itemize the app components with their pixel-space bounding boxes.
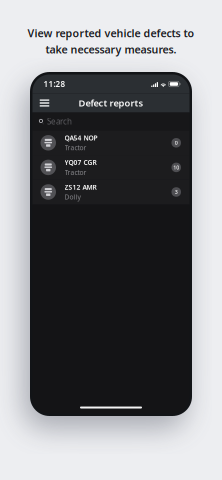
staticText: QA54 NOP	[64, 133, 97, 142]
staticText: Search	[47, 116, 72, 127]
staticText: Tractor	[64, 168, 86, 177]
button[interactable]: Search	[32, 112, 189, 130]
staticText: take necessary measures.	[45, 42, 176, 56]
staticText: Dolly	[64, 192, 80, 201]
staticText: Tractor	[64, 143, 86, 152]
staticText: ZS12 AMR	[64, 183, 96, 191]
button[interactable]: QA54 NOP	[32, 130, 189, 155]
button[interactable]: Menu	[35, 93, 53, 112]
staticText: Defect reports	[78, 97, 143, 109]
staticText: YQ07 CGR	[64, 158, 96, 167]
button[interactable]: ZS12 AMR	[32, 180, 189, 204]
button[interactable]: YQ07 CGR	[32, 155, 189, 180]
staticText: 3	[175, 188, 178, 196]
staticText: 10	[173, 164, 179, 171]
staticText: 0	[175, 139, 178, 146]
staticText: 11:28	[43, 79, 65, 89]
staticText: View reported vehicle defects to	[27, 26, 194, 40]
